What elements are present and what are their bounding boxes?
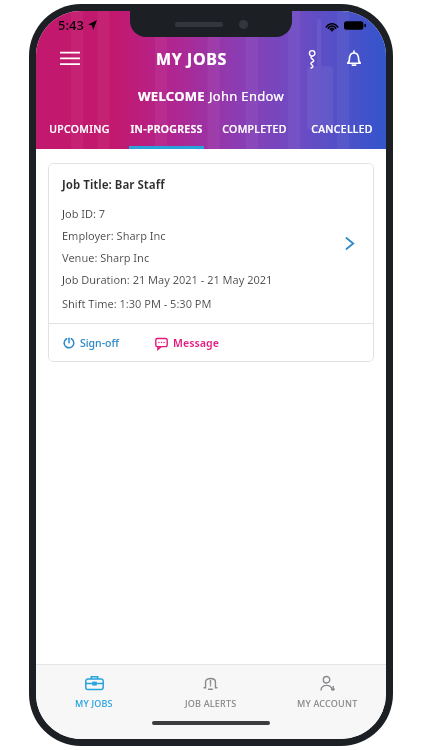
- staticText: Shift Time: 1:30 PM - 5:30 PM: [62, 296, 212, 311]
- staticText: MY JOBS: [75, 697, 113, 709]
- staticText: Job Title: Bar Staff: [62, 177, 165, 193]
- staticText: IN-PROGRESS: [130, 122, 203, 136]
- staticText: UPCOMING: [49, 122, 110, 136]
- button[interactable]: Menu: [52, 41, 88, 77]
- button[interactable]: MY ACCOUNT: [269, 665, 386, 717]
- button[interactable]: Job Title: Bar Staff: [48, 163, 374, 362]
- staticText: 5:43: [58, 16, 84, 34]
- button[interactable]: Profile: [296, 43, 328, 75]
- staticText: CANCELLED: [311, 122, 373, 136]
- staticText: Message: [173, 336, 219, 350]
- button[interactable]: Notifications: [338, 43, 370, 75]
- staticText: Employer: Sharp Inc: [62, 228, 166, 243]
- button[interactable]: Message: [153, 332, 221, 354]
- button[interactable]: JOB ALERTS: [152, 665, 269, 717]
- button[interactable]: Open job details: [338, 232, 360, 254]
- button[interactable]: IN-PROGRESS: [123, 117, 210, 149]
- staticText: John Endow: [209, 87, 284, 105]
- staticText: JOB ALERTS: [185, 697, 237, 709]
- button[interactable]: UPCOMING: [36, 117, 123, 149]
- staticText: COMPLETED: [222, 122, 287, 136]
- staticText: Job Duration: 21 May 2021 - 21 May 2021: [62, 272, 273, 287]
- button[interactable]: Sign-off: [61, 332, 121, 354]
- staticText: Venue: Sharp Inc: [62, 250, 150, 265]
- button[interactable]: MY JOBS: [36, 665, 152, 717]
- staticText: MY JOBS: [156, 48, 227, 70]
- staticText: Job ID: 7: [62, 206, 106, 221]
- staticText: WELCOME: [138, 87, 209, 105]
- staticText: Sign-off: [80, 336, 119, 350]
- staticText: MY ACCOUNT: [297, 697, 358, 709]
- button[interactable]: COMPLETED: [210, 117, 298, 149]
- button[interactable]: CANCELLED: [298, 117, 386, 149]
